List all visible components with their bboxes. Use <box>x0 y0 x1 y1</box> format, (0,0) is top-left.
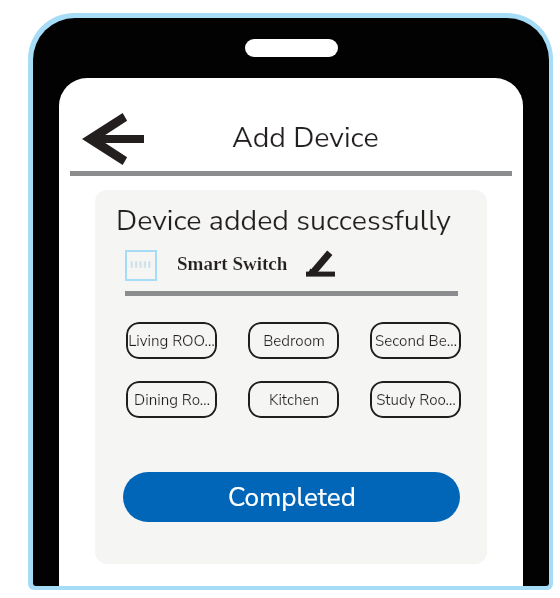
staticText: Device added successfully <box>116 201 452 240</box>
staticText: Kitchen <box>269 390 319 410</box>
button[interactable]: Dining Ro… <box>126 381 217 418</box>
button[interactable]: Edit name <box>300 244 340 282</box>
staticText: Dining Ro… <box>134 390 210 410</box>
staticText: Add Device <box>232 118 379 157</box>
staticText: Smart Switch <box>177 253 288 274</box>
button[interactable]: Kitchen <box>248 381 339 418</box>
button[interactable]: Study Roo… <box>370 381 461 418</box>
button[interactable]: Completed <box>123 472 460 522</box>
button[interactable]: Second Be… <box>370 322 461 359</box>
staticText: Completed <box>228 480 356 515</box>
button[interactable]: Back <box>75 107 151 171</box>
button[interactable]: Living ROO… <box>126 322 217 359</box>
staticText: Study Roo… <box>376 390 456 410</box>
staticText: Second Be… <box>375 331 457 351</box>
staticText: Living ROO… <box>128 331 215 351</box>
button[interactable]: Bedroom <box>248 322 339 359</box>
staticText: Bedroom <box>263 331 325 351</box>
